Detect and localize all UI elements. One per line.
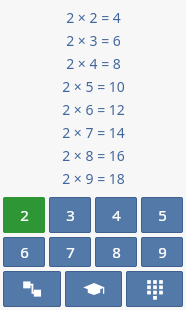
button[interactable]: 2 × 9 = 18 [0, 167, 186, 190]
button[interactable]: 9 [141, 237, 183, 267]
staticText: 7 [66, 242, 75, 262]
button[interactable]: 2 × 7 = 14 [0, 121, 186, 144]
button[interactable]: 6 [3, 237, 45, 267]
staticText: 2 × 8 = 16 [62, 146, 125, 165]
staticText: 9 [158, 242, 167, 262]
button[interactable]: 4 [95, 197, 137, 233]
button[interactable]: 3 [49, 197, 91, 233]
staticText: 2 [20, 205, 29, 225]
staticText: 2 × 2 = 4 [66, 8, 121, 27]
button[interactable]: Practice [3, 271, 61, 307]
staticText: 3 [66, 205, 75, 225]
button[interactable]: 8 [95, 237, 137, 267]
button[interactable]: 2 × 8 = 16 [0, 144, 186, 167]
button[interactable]: 2 × 2 = 4 [0, 6, 186, 29]
staticText: 2 × 6 = 12 [62, 100, 125, 119]
button[interactable]: Keypad [126, 271, 183, 307]
button[interactable]: 2 × 4 = 8 [0, 52, 186, 75]
staticText: 4 [112, 205, 121, 225]
staticText: 2 × 3 = 6 [66, 31, 121, 50]
button[interactable]: 2 × 3 = 6 [0, 29, 186, 52]
button[interactable]: Learn [65, 271, 122, 307]
staticText: 8 [112, 242, 121, 262]
button[interactable]: 2 × 5 = 10 [0, 75, 186, 98]
button[interactable]: 7 [49, 237, 91, 267]
button[interactable]: 2 [3, 197, 45, 233]
staticText: 2 × 5 = 10 [62, 77, 125, 96]
staticText: 5 [158, 205, 167, 225]
staticText: 6 [20, 242, 29, 262]
staticText: 2 × 4 = 8 [66, 54, 121, 73]
button[interactable]: 2 × 6 = 12 [0, 98, 186, 121]
staticText: 2 × 7 = 14 [62, 123, 125, 142]
button[interactable]: 5 [141, 197, 183, 233]
staticText: 2 × 9 = 18 [62, 169, 125, 188]
